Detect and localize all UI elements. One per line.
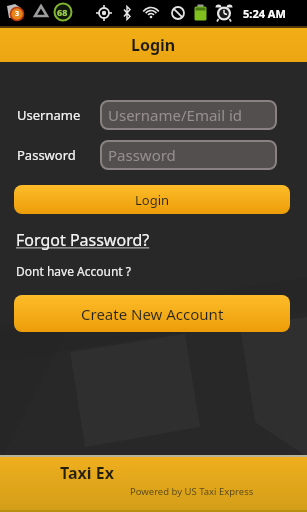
button[interactable]: Create New Account [14, 295, 290, 332]
staticText: Dont have Account ? [16, 263, 131, 279]
button[interactable]: Password [100, 140, 277, 170]
staticText: Login [135, 191, 170, 209]
staticText: Password [17, 146, 76, 164]
staticText: Username [17, 106, 81, 124]
staticText: Powered by US Taxi Express [130, 485, 254, 498]
button[interactable]: Username/Email id [100, 100, 277, 130]
button[interactable]: Login [14, 185, 290, 214]
staticText: 5:24 AM [243, 6, 286, 21]
button[interactable]: Forgot Password? [16, 229, 150, 251]
staticText: Taxi Ex [60, 462, 114, 484]
staticText: Username/Email id [108, 105, 243, 125]
staticText: 68 [57, 6, 68, 18]
staticText: Create New Account [81, 304, 224, 324]
staticText: Login [131, 34, 176, 56]
staticText: Password [108, 145, 176, 165]
staticText: 3 [15, 9, 20, 19]
